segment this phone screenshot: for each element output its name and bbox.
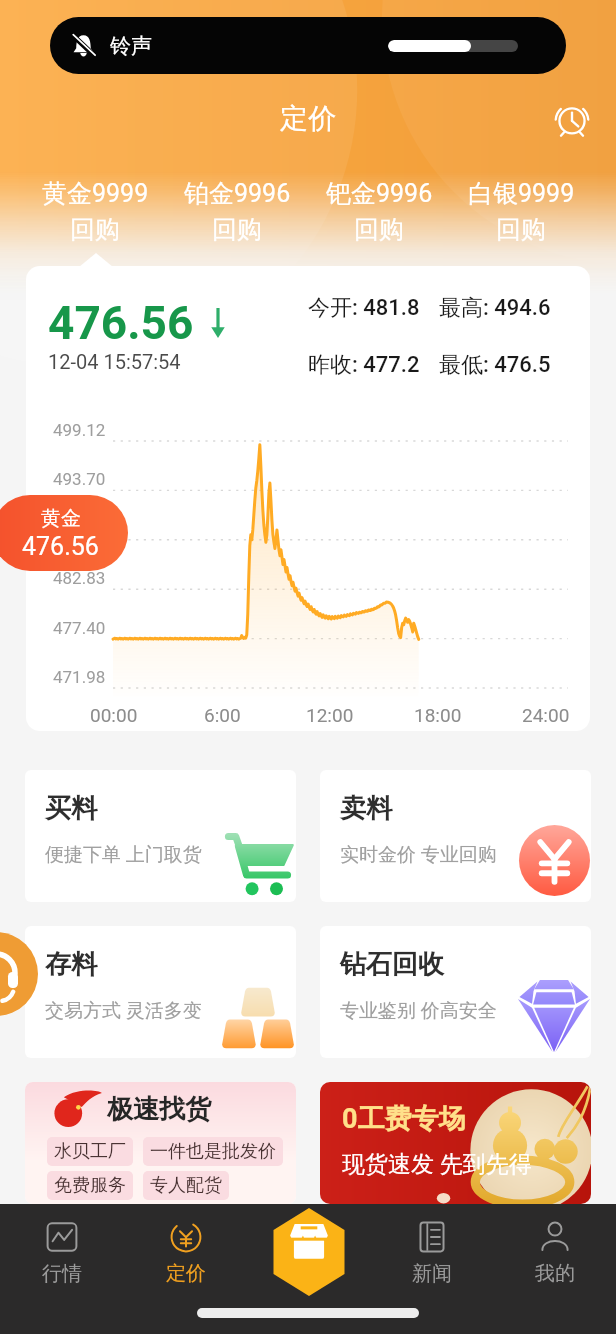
staticText: 昨收: 477.2 [308, 351, 420, 379]
staticText: 回购 [70, 214, 120, 245]
staticText: 买料 [45, 792, 97, 825]
staticText: 12:00 [306, 704, 354, 726]
staticText: 回购 [354, 214, 404, 245]
button[interactable]: 黄金 [0, 495, 128, 571]
staticText: 回购 [212, 214, 262, 245]
staticText: 行情 [42, 1261, 82, 1286]
staticText: 钻石回收 [340, 948, 444, 981]
staticText: 黄金9999 [42, 178, 149, 209]
staticText: 水贝工厂 [54, 1140, 126, 1163]
staticText: 回购 [496, 214, 546, 245]
staticText: 专业鉴别 价高安全 [340, 999, 497, 1023]
staticText: 最低: 476.5 [439, 351, 551, 379]
staticText: 0工费专场 [342, 1102, 466, 1136]
staticText: 今开: 481.8 [308, 294, 420, 322]
staticText: 专人配货 [150, 1174, 222, 1197]
button[interactable]: 行情 [0, 1219, 124, 1286]
button[interactable]: 黄金9999 [24, 178, 166, 245]
staticText: 6:00 [204, 704, 241, 726]
button[interactable]: 钯金9996 [308, 178, 450, 245]
staticText: 476.56 [48, 296, 194, 350]
button[interactable]: 卖料 [320, 770, 591, 902]
button[interactable]: Customer service [0, 932, 38, 1016]
button[interactable]: 我的 [493, 1219, 616, 1286]
staticText: 477.40 [53, 618, 106, 638]
button[interactable]: 0工费专场 [320, 1082, 591, 1204]
staticText: 交易方式 灵活多变 [45, 999, 202, 1023]
staticText: 499.12 [53, 420, 106, 440]
button[interactable]: 钻石回收 [320, 926, 591, 1058]
button[interactable]: 铃声 [50, 17, 566, 74]
staticText: 00:00 [90, 704, 138, 726]
staticText: 白银9999 [468, 178, 575, 209]
staticText: 最高: 494.6 [439, 294, 551, 322]
staticText: 476.56 [22, 532, 99, 561]
staticText: 黄金 [41, 506, 81, 531]
staticText: 现货速发 先到先得 [342, 1150, 532, 1179]
staticText: 存料 [45, 948, 97, 981]
staticText: 便捷下单 上门取货 [45, 843, 202, 867]
button[interactable]: 定价 [124, 1219, 247, 1286]
staticText: 我的 [535, 1261, 575, 1286]
staticText: 铃声 [110, 33, 152, 59]
staticText: 12-04 15:57:54 [48, 350, 181, 373]
staticText: 卖料 [340, 792, 392, 825]
button[interactable]: 买料 [25, 770, 296, 902]
button[interactable]: 存料 [25, 926, 296, 1058]
staticText: 实时金价 专业回购 [340, 843, 497, 867]
staticText: 482.83 [53, 568, 106, 588]
staticText: 定价 [280, 101, 336, 136]
staticText: 18:00 [414, 704, 462, 726]
staticText: 钯金9996 [326, 178, 433, 209]
button[interactable]: 极速找货 [25, 1082, 296, 1204]
button[interactable]: 新闻 [370, 1219, 493, 1286]
button[interactable]: 商城 [268, 1208, 350, 1296]
staticText: 极速找货 [107, 1093, 211, 1126]
staticText: 一件也是批发价 [150, 1140, 276, 1163]
staticText: 铂金9996 [184, 178, 291, 209]
staticText: 24:00 [522, 704, 570, 726]
staticText: 471.98 [53, 667, 106, 687]
button[interactable]: 白银9999 [450, 178, 592, 245]
staticText: 493.70 [53, 469, 106, 489]
staticText: 新闻 [412, 1261, 452, 1286]
staticText: 定价 [166, 1261, 206, 1286]
button[interactable]: 铂金9996 [166, 178, 308, 245]
staticText: 免费服务 [54, 1174, 126, 1197]
button[interactable]: Alarm [548, 95, 596, 143]
